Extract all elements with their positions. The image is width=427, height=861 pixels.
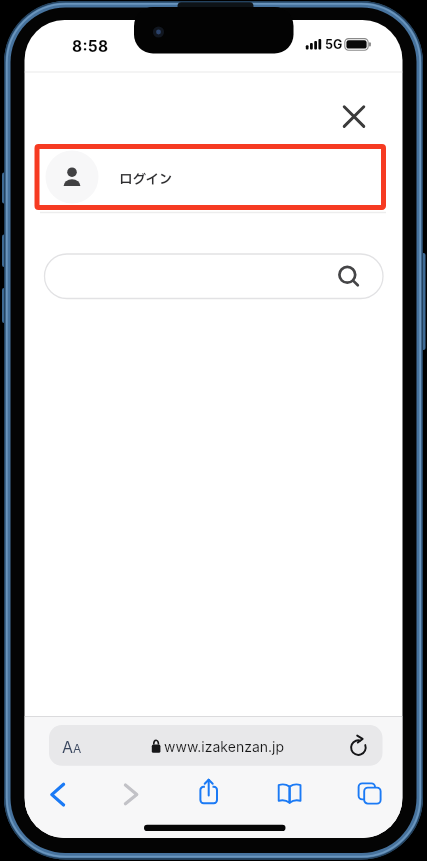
staticText: 8:58 [72, 37, 109, 56]
staticText: AA [62, 737, 82, 756]
button[interactable] [34, 144, 386, 210]
staticText: ログイン [119, 170, 173, 190]
button[interactable] [191, 775, 227, 811]
staticText: www.izakenzan.jp [164, 738, 285, 755]
button[interactable] [272, 777, 308, 813]
button[interactable] [49, 725, 383, 766]
button[interactable] [40, 777, 76, 813]
button[interactable] [338, 100, 370, 132]
button[interactable] [114, 777, 150, 813]
button[interactable] [44, 254, 383, 299]
button[interactable] [352, 777, 388, 813]
staticText: 5G [325, 37, 343, 52]
